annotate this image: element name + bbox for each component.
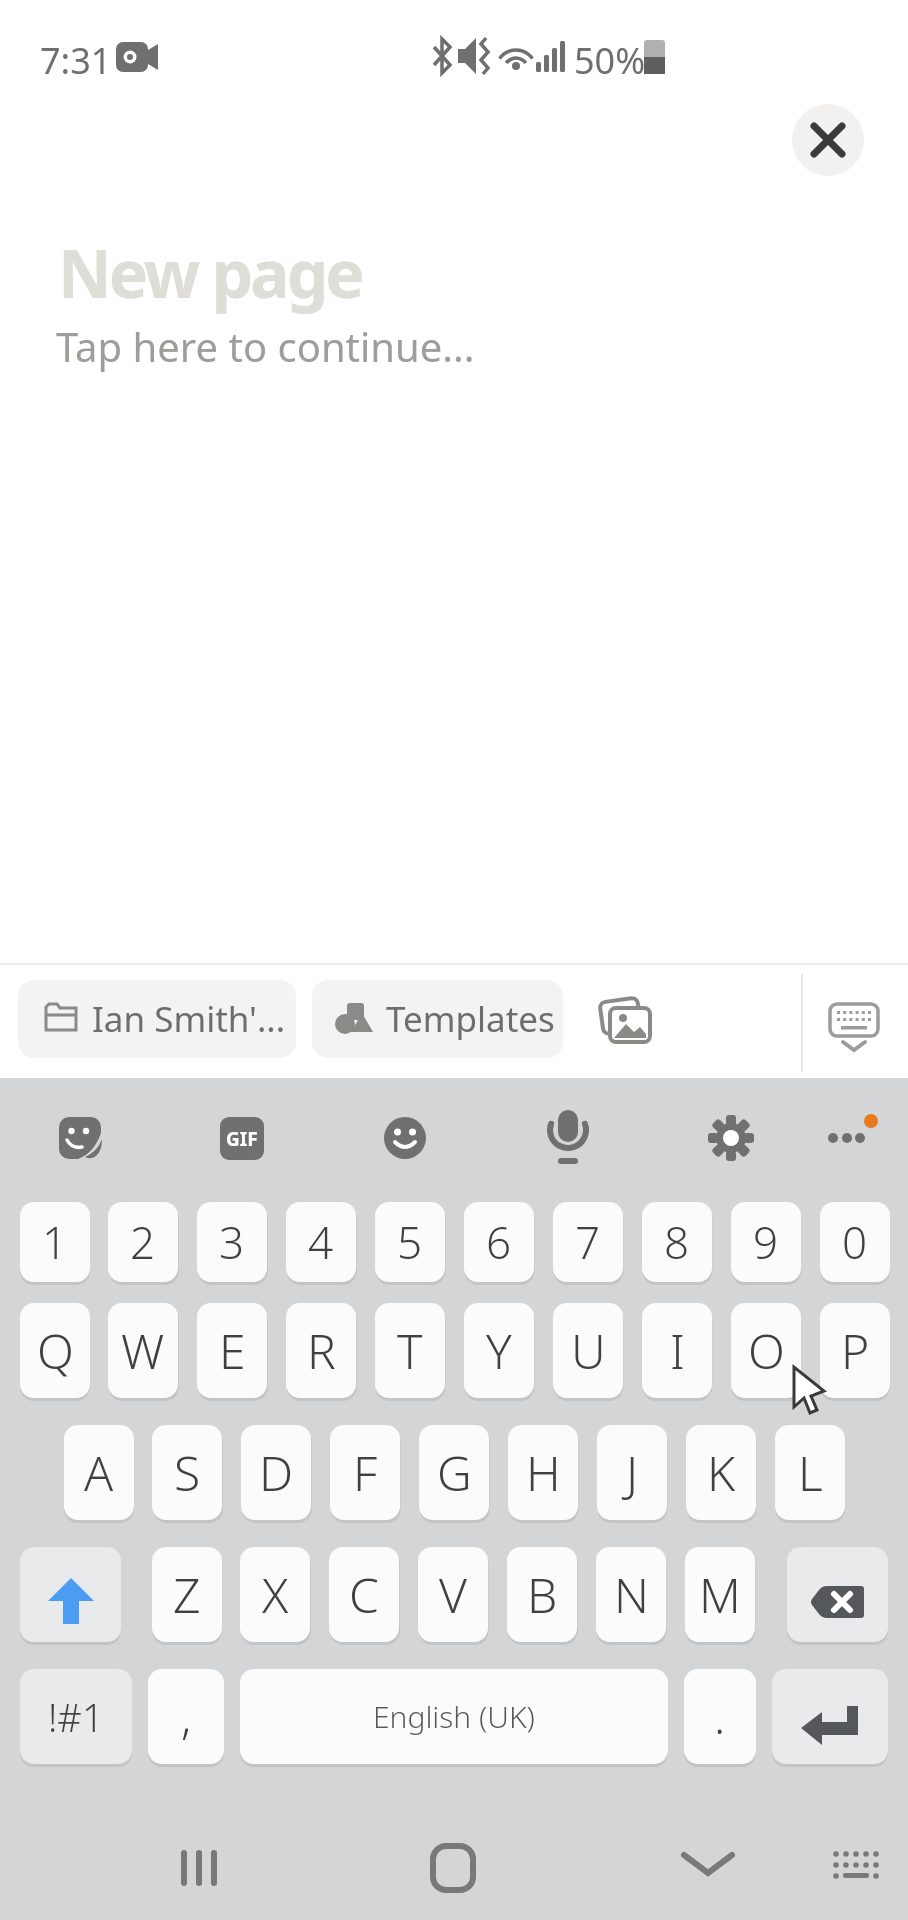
staticText: . bbox=[714, 1685, 726, 1748]
staticText: 7 bbox=[575, 1212, 601, 1272]
button[interactable] bbox=[596, 994, 652, 1050]
button[interactable]: English (UK) bbox=[240, 1669, 668, 1764]
button[interactable]: K bbox=[686, 1425, 756, 1520]
staticText: E bbox=[219, 1318, 246, 1383]
staticText: 8 bbox=[664, 1212, 690, 1272]
button[interactable]: . bbox=[684, 1669, 756, 1764]
button[interactable]: 2 bbox=[108, 1202, 178, 1282]
button[interactable]: Z bbox=[152, 1547, 222, 1642]
button[interactable]: 5 bbox=[375, 1202, 445, 1282]
staticText: I bbox=[670, 1318, 685, 1383]
staticText: M bbox=[699, 1562, 741, 1627]
staticText: W bbox=[121, 1318, 165, 1383]
button[interactable]: X bbox=[240, 1547, 310, 1642]
button[interactable]: 3 bbox=[197, 1202, 267, 1282]
staticText: 4 bbox=[308, 1212, 334, 1272]
button[interactable]: W bbox=[108, 1303, 178, 1398]
staticText: Y bbox=[486, 1318, 512, 1383]
button[interactable]: Q bbox=[20, 1303, 90, 1398]
button[interactable]: E bbox=[197, 1303, 267, 1398]
staticText: D bbox=[259, 1440, 294, 1505]
button[interactable]: C bbox=[329, 1547, 399, 1642]
button[interactable]: 9 bbox=[731, 1202, 801, 1282]
button[interactable]: H bbox=[508, 1425, 578, 1520]
button[interactable] bbox=[58, 1115, 104, 1161]
staticText: 6 bbox=[486, 1212, 512, 1272]
staticText: P bbox=[841, 1318, 870, 1383]
button[interactable] bbox=[383, 1116, 427, 1160]
button[interactable]: 7 bbox=[553, 1202, 623, 1282]
button[interactable]: M bbox=[685, 1547, 755, 1642]
staticText: 5 bbox=[397, 1212, 423, 1272]
staticText: , bbox=[181, 1685, 192, 1748]
staticText: A bbox=[84, 1440, 114, 1505]
staticText: H bbox=[526, 1440, 561, 1505]
button[interactable]: 6 bbox=[464, 1202, 534, 1282]
button[interactable] bbox=[423, 1840, 483, 1896]
button[interactable]: GIF bbox=[220, 1117, 264, 1160]
button[interactable]: 1 bbox=[20, 1202, 90, 1282]
button[interactable]: J bbox=[597, 1425, 667, 1520]
staticText: K bbox=[707, 1440, 736, 1505]
button[interactable]: , bbox=[148, 1669, 224, 1764]
staticText: J bbox=[626, 1440, 639, 1505]
button[interactable]: B bbox=[507, 1547, 577, 1642]
staticText: U bbox=[571, 1318, 606, 1383]
staticText: English (UK) bbox=[373, 1696, 535, 1737]
staticText: New page bbox=[58, 227, 362, 317]
staticText: 0 bbox=[842, 1212, 868, 1272]
button[interactable] bbox=[163, 1840, 235, 1896]
button[interactable]: Templates bbox=[312, 980, 563, 1058]
staticText: O bbox=[748, 1318, 785, 1383]
button[interactable]: L bbox=[775, 1425, 845, 1520]
button[interactable] bbox=[830, 1844, 882, 1892]
button[interactable]: O bbox=[731, 1303, 801, 1398]
staticText: 7:31 bbox=[40, 36, 112, 85]
button[interactable]: 0 bbox=[820, 1202, 890, 1282]
button[interactable] bbox=[545, 1108, 591, 1164]
staticText: V bbox=[439, 1562, 467, 1627]
button[interactable]: D bbox=[241, 1425, 311, 1520]
button[interactable]: S bbox=[152, 1425, 222, 1520]
staticText: !#1 bbox=[48, 1691, 104, 1743]
button[interactable] bbox=[772, 1669, 888, 1764]
button[interactable]: Ian Smith'... bbox=[18, 980, 296, 1058]
button[interactable]: T bbox=[375, 1303, 445, 1398]
button[interactable]: Y bbox=[464, 1303, 534, 1398]
staticText: R bbox=[307, 1318, 336, 1383]
staticText: C bbox=[349, 1562, 379, 1627]
button[interactable]: 4 bbox=[286, 1202, 356, 1282]
button[interactable]: !#1 bbox=[20, 1669, 132, 1764]
staticText: T bbox=[397, 1318, 423, 1383]
button[interactable]: I bbox=[642, 1303, 712, 1398]
staticText: Ian Smith'... bbox=[92, 995, 286, 1043]
button[interactable]: A bbox=[64, 1425, 134, 1520]
staticText: S bbox=[174, 1440, 201, 1505]
button[interactable]: 8 bbox=[642, 1202, 712, 1282]
staticText: G bbox=[437, 1440, 472, 1505]
button[interactable] bbox=[678, 1840, 738, 1896]
button[interactable]: P bbox=[820, 1303, 890, 1398]
button[interactable] bbox=[824, 1108, 884, 1154]
button[interactable] bbox=[20, 1547, 121, 1642]
staticText: L bbox=[798, 1440, 823, 1505]
button[interactable]: Tap here to continue... bbox=[56, 319, 475, 373]
staticText: X bbox=[262, 1562, 289, 1627]
button[interactable] bbox=[792, 104, 864, 176]
button[interactable] bbox=[787, 1547, 888, 1642]
button[interactable]: V bbox=[418, 1547, 488, 1642]
button[interactable]: U bbox=[553, 1303, 623, 1398]
button[interactable]: R bbox=[286, 1303, 356, 1398]
staticText: 9 bbox=[753, 1212, 779, 1272]
button[interactable]: N bbox=[596, 1547, 666, 1642]
staticText: N bbox=[614, 1562, 649, 1627]
button[interactable] bbox=[708, 1115, 754, 1161]
button[interactable]: G bbox=[419, 1425, 489, 1520]
staticText: 50% bbox=[574, 36, 646, 85]
staticText: Templates bbox=[386, 995, 555, 1043]
staticText: Tap here to continue... bbox=[56, 319, 475, 373]
button[interactable] bbox=[826, 998, 882, 1058]
staticText: GIF bbox=[226, 1126, 258, 1152]
button[interactable]: F bbox=[330, 1425, 400, 1520]
staticText: B bbox=[527, 1562, 558, 1627]
